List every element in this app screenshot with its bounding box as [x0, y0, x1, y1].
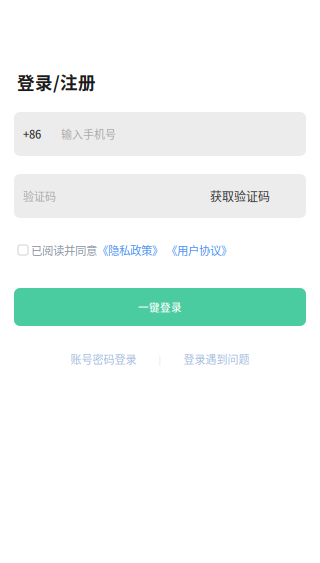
button[interactable]: 《隐私政策》: [97, 242, 163, 258]
staticText: 账号密码登录: [70, 351, 136, 367]
staticText: |: [158, 352, 161, 366]
staticText: 《用户协议》: [166, 242, 232, 258]
staticText: 输入手机号: [61, 126, 116, 142]
staticText: 《隐私政策》: [97, 242, 163, 258]
button[interactable]: 同意协议: [18, 245, 28, 255]
staticText: 登录/注册: [17, 69, 96, 94]
button[interactable]: 《用户协议》: [163, 242, 232, 258]
button[interactable]: 获取验证码: [210, 187, 270, 205]
staticText: 一键登录: [138, 299, 182, 315]
staticText: +86: [23, 126, 41, 142]
button[interactable]: 一键登录: [14, 288, 306, 326]
button[interactable]: 登录遇到问题: [183, 351, 249, 367]
staticText: 验证码: [23, 188, 56, 204]
staticText: 登录遇到问题: [183, 351, 249, 367]
staticText: 获取验证码: [210, 187, 270, 205]
staticText: 已阅读并同意: [31, 242, 97, 258]
button[interactable]: 账号密码登录: [70, 351, 136, 367]
